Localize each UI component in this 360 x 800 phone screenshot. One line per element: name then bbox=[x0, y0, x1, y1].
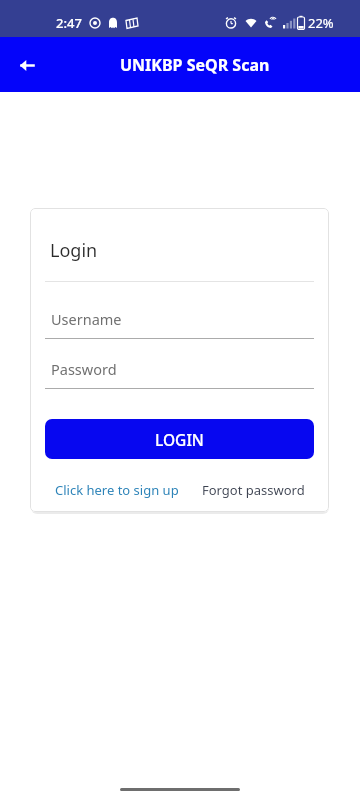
button[interactable]: LOGIN bbox=[45, 419, 314, 459]
staticText: Login bbox=[50, 238, 98, 263]
button[interactable]: Click here to sign up bbox=[55, 481, 179, 499]
staticText: 22% bbox=[308, 14, 334, 32]
button[interactable]: Password bbox=[45, 339, 314, 389]
button[interactable] bbox=[10, 48, 44, 82]
staticText: LOGIN bbox=[155, 429, 204, 450]
staticText: UNIKBP SeQR Scan bbox=[120, 54, 270, 76]
button[interactable]: Username bbox=[45, 282, 314, 339]
staticText: Forgot password bbox=[202, 481, 305, 499]
staticText: Username bbox=[51, 309, 122, 329]
staticText: Password bbox=[51, 359, 117, 379]
staticText: 2:47 bbox=[56, 14, 82, 32]
staticText: Click here to sign up bbox=[55, 481, 179, 499]
button[interactable]: Forgot password bbox=[202, 481, 305, 499]
